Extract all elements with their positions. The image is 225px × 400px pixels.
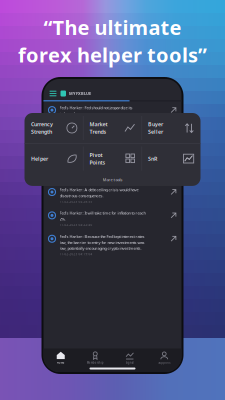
button[interactable]: Menu [48,89,57,98]
staticText: 11-02-2023 04:19:04 [59,252,92,256]
staticText: SnR [148,155,157,162]
staticText: Membership [87,361,104,364]
button[interactable]: Fed's Harker: Because the Fed kept inter… [43,230,181,260]
staticText: More tools [102,177,122,182]
staticText: Supports [158,361,170,364]
staticText: Points [89,159,105,166]
staticText: Fed's Harker: Because the Fed kept inter… [59,234,144,239]
staticText: independence. [59,111,83,116]
staticText: “The ultimate [43,14,181,41]
staticText: forex helper tools” [18,42,207,68]
staticText: Seller [148,128,163,135]
staticText: Home [57,361,65,364]
staticText: Helper [31,155,48,162]
button[interactable]: Market [83,113,141,143]
staticText: Strength [31,128,52,135]
button[interactable]: More tools [24,174,200,186]
staticText: Trends [89,128,106,135]
button[interactable]: Supports [147,351,181,364]
button[interactable]: Membership [78,351,112,364]
staticText: 11-02-2023 04:22:40 [59,223,92,227]
staticText: Fed's Harker: A US debt default would be… [59,158,147,163]
staticText: low, potentially encouraging crypto inve… [59,246,141,251]
button[interactable]: Helper [25,144,83,174]
staticText: Pivot [89,151,102,158]
staticText: to solve them. [59,140,83,146]
button[interactable]: Fed's Harker: Fed should not jeopardize … [43,102,181,125]
staticText: Fed's Harker: A debt ceiling crisis woul… [59,187,138,192]
staticText: Market [89,121,107,128]
button[interactable]: Home [43,351,78,364]
staticText: Buyer [148,121,163,128]
staticText: MYFXBLUE [69,91,91,96]
button[interactable]: Fed's Harker: A US debt default would be… [43,154,181,183]
button[interactable]: SnR [142,144,200,174]
staticText: disastrous consequences. [59,193,103,198]
button[interactable]: Fed's Harker: We have problems in the Fe… [43,125,181,154]
staticText: low, the barrier to entry for new invest… [59,240,144,245]
staticText: Fed's Harker: Fed should not jeopardize … [59,105,132,110]
staticText: Fed's Harker: It will take time for infl… [59,210,145,216]
staticText: Currency [31,121,53,128]
staticText: Signal [126,361,134,364]
button[interactable]: Fed's Harker: It will take time for infl… [43,207,181,230]
button[interactable]: Signal [112,351,147,364]
staticText: Fed's Harker: We have problems in the Fe… [59,128,141,134]
button[interactable]: Pivot [83,144,141,174]
button[interactable]: Currency [25,113,83,143]
button[interactable]: Buyer [142,113,200,143]
staticText: 11-02-2023 04:28:55 [59,200,92,203]
button[interactable]: Fed's Harker: A debt ceiling crisis woul… [43,183,181,207]
staticText: 2%. [59,216,65,222]
staticText: recover from, and our enemies would chee… [59,164,146,169]
